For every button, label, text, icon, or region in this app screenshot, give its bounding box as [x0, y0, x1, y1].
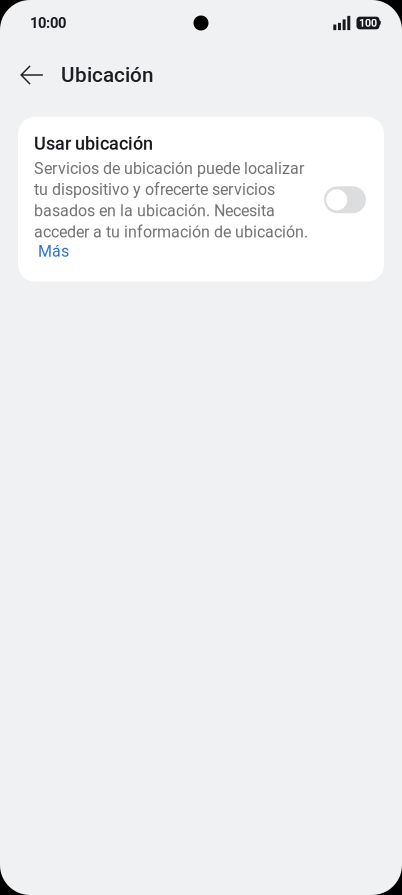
button[interactable]: Usar ubicación — [324, 180, 366, 213]
button[interactable]: Back — [10, 50, 54, 100]
staticText: 10:00 — [30, 14, 66, 32]
staticText: Servicios de ubicación puede localizar t… — [34, 159, 308, 241]
staticText: Usar ubicación — [34, 133, 153, 154]
staticText: Ubicación — [61, 63, 154, 87]
staticText: 100 — [359, 17, 377, 29]
staticText: Más — [38, 242, 69, 261]
button[interactable]: Más — [34, 242, 69, 261]
